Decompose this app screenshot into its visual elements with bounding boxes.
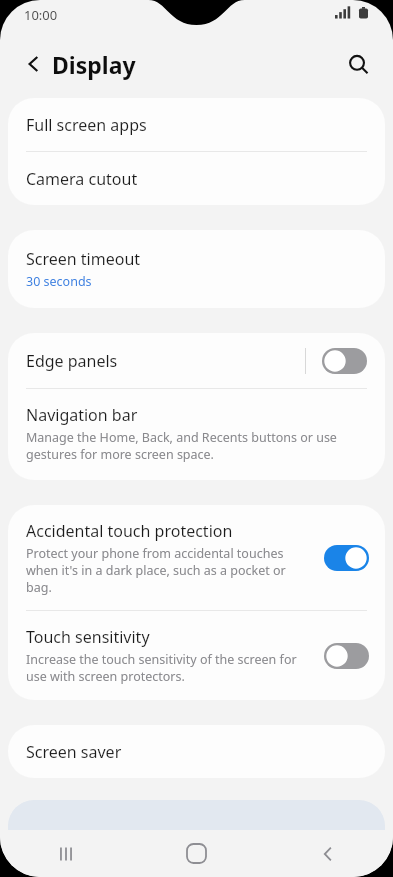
button[interactable]: Home [131, 830, 262, 877]
staticText: 30 seconds [26, 273, 92, 290]
staticText: Edge panels [26, 350, 118, 372]
staticText: Increase the touch sensitivity of the sc… [26, 651, 310, 685]
staticText: Looking for something else? [26, 824, 252, 847]
staticText: Full screen apps [26, 114, 147, 136]
staticText: 10:00 [24, 6, 58, 24]
button[interactable]: Toggle off [322, 348, 367, 374]
staticText: Protect your phone from accidental touch… [26, 545, 310, 596]
button[interactable]: Search [337, 43, 379, 85]
button[interactable]: Accidental touch protection [8, 505, 385, 610]
button[interactable]: Toggle off [324, 643, 369, 669]
staticText: Touch sensitivity [26, 626, 150, 648]
button[interactable]: Back [14, 44, 54, 84]
button[interactable]: Edge panels [8, 333, 385, 388]
button[interactable]: Full screen apps [8, 98, 385, 151]
button[interactable]: Navigation bar [8, 389, 385, 480]
button[interactable]: Looking for something else? [8, 800, 385, 860]
button[interactable]: Recents [0, 830, 131, 877]
button[interactable]: Toggle on [324, 545, 369, 571]
button[interactable]: Back [262, 830, 393, 877]
button[interactable]: Screen saver [8, 725, 385, 778]
staticText: Camera cutout [26, 168, 138, 190]
staticText: Screen timeout [26, 248, 141, 270]
button[interactable]: Touch sensitivity [8, 611, 385, 700]
staticText: Manage the Home, Back, and Recents butto… [26, 429, 345, 463]
staticText: Accidental touch protection [26, 520, 233, 542]
staticText: Screen saver [26, 741, 122, 763]
button[interactable]: Screen timeout [8, 230, 385, 308]
staticText: Display [52, 49, 136, 80]
button[interactable]: Camera cutout [8, 152, 385, 205]
staticText: Navigation bar [26, 404, 138, 426]
